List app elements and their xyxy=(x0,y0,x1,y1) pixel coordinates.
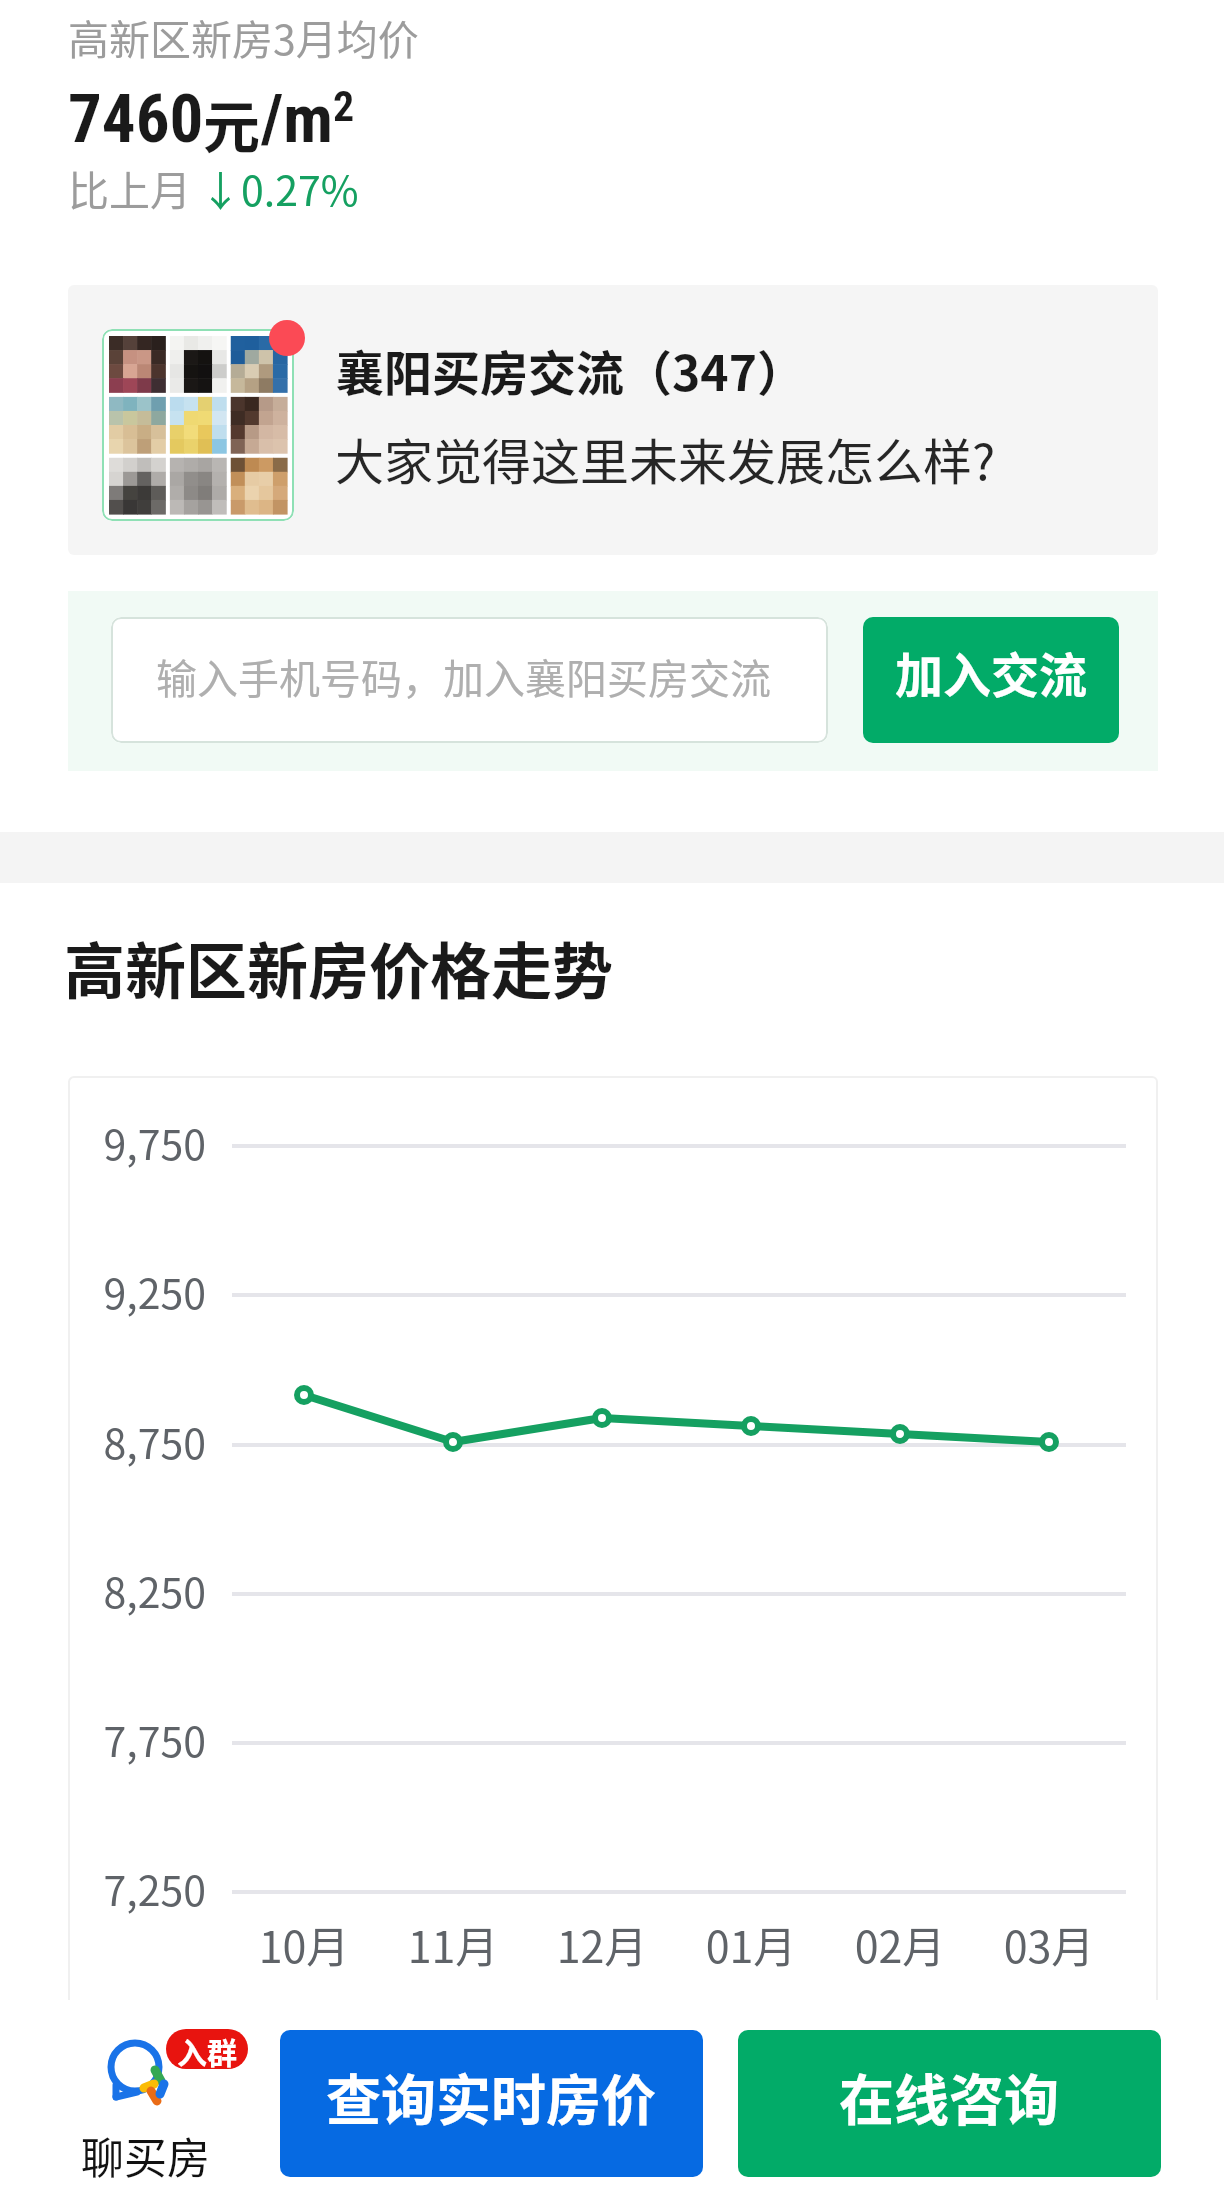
staticText: 01月 xyxy=(681,1913,821,1975)
other: 聊买房 入群 xyxy=(81,2022,251,2122)
staticText: 9,250 xyxy=(103,1261,205,1320)
staticText: 7,750 xyxy=(103,1709,205,1768)
button[interactable]: 查询实时房价 xyxy=(280,2030,703,2177)
staticText: 02月 xyxy=(830,1913,970,1975)
button[interactable]: 加入交流 xyxy=(863,617,1119,743)
staticText: 8,750 xyxy=(103,1411,205,1470)
staticText: 11月 xyxy=(383,1913,523,1975)
staticText: 9,750 xyxy=(103,1112,205,1171)
staticText: 在线咨询 xyxy=(839,2056,1060,2136)
staticText: 7,250 xyxy=(103,1858,205,1917)
staticText: 输入手机号码，加入襄阳买房交流 xyxy=(156,646,771,705)
staticText: 加入交流 xyxy=(895,637,1088,707)
staticText: 10月 xyxy=(234,1913,374,1975)
staticText: 入群 xyxy=(177,2029,237,2069)
button[interactable]: 聊买房 入群 xyxy=(81,2022,256,2186)
staticText: 聊买房 xyxy=(81,2124,210,2186)
button[interactable]: 在线咨询 xyxy=(738,2030,1161,2177)
staticText: 12月 xyxy=(532,1913,672,1975)
staticText: 襄阳买房交流（347） xyxy=(336,335,805,405)
staticText: ↓0.27% xyxy=(200,158,359,217)
staticText: 高新区新房价格走势 xyxy=(64,923,614,1011)
button[interactable]: 输入手机号码，加入襄阳买房交流 xyxy=(111,617,828,743)
staticText: 元 xyxy=(203,82,260,165)
staticText: 7460 xyxy=(68,80,204,159)
staticText: 大家觉得这里未来发展怎么样? xyxy=(335,423,996,494)
staticText: 查询实时房价 xyxy=(326,2056,657,2136)
button[interactable]: 襄阳买房交流（347） xyxy=(68,285,1158,555)
staticText: 比上月 xyxy=(68,158,191,217)
staticText: /m xyxy=(261,80,333,159)
staticText: 8,250 xyxy=(103,1560,205,1619)
staticText: 03月 xyxy=(979,1913,1119,1975)
staticText: 高新区新房3月均价 xyxy=(68,7,419,66)
staticText: 2 xyxy=(333,82,355,131)
